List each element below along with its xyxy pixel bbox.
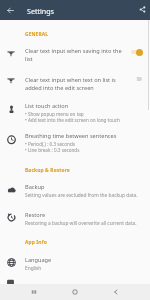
staticText: Restoring a backup will overwrite all cu… [25, 220, 137, 227]
button[interactable]: Back [2, 2, 18, 18]
button[interactable]: Back [109, 285, 123, 299]
staticText: Setting values are excluded from the bac… [25, 192, 138, 199]
button[interactable]: Home [68, 285, 82, 299]
button[interactable]: More settings [2, 275, 22, 284]
staticText: Restore [25, 211, 46, 219]
staticText: Language [25, 256, 52, 264]
button[interactable]: Breathing time between sentences [0, 128, 150, 157]
staticText: Clear text input when text on list is ad… [25, 76, 123, 91]
staticText: English [25, 265, 42, 272]
staticText: Clear text input when saving into the li… [25, 47, 123, 62]
staticText: Settings [27, 6, 54, 16]
button[interactable]: Share [135, 2, 150, 17]
staticText: • Line break : 0.3 seconds [25, 147, 80, 153]
staticText: • Show popup menu on tap [25, 111, 84, 117]
button[interactable]: Restore [0, 207, 150, 229]
staticText: GENERAL [25, 31, 49, 38]
button[interactable]: Recents [27, 285, 41, 299]
button[interactable]: Backup [0, 179, 150, 201]
button[interactable]: Clear text input when saving into the li… [0, 42, 150, 66]
staticText: • Period(.) : 0.3 seconds [25, 141, 75, 147]
staticText: Backup & Restore [25, 167, 70, 174]
staticText: Backup [25, 183, 45, 191]
staticText: List touch action [25, 102, 69, 110]
button[interactable]: Language [0, 252, 150, 274]
button[interactable]: List touch action [0, 98, 150, 127]
button[interactable]: Clear text input when text on list is ad… [0, 71, 150, 95]
staticText: App Info [25, 239, 47, 246]
staticText: Breathing time between sentences [25, 132, 117, 140]
staticText: • Add text into the edit screen on long … [25, 117, 120, 123]
